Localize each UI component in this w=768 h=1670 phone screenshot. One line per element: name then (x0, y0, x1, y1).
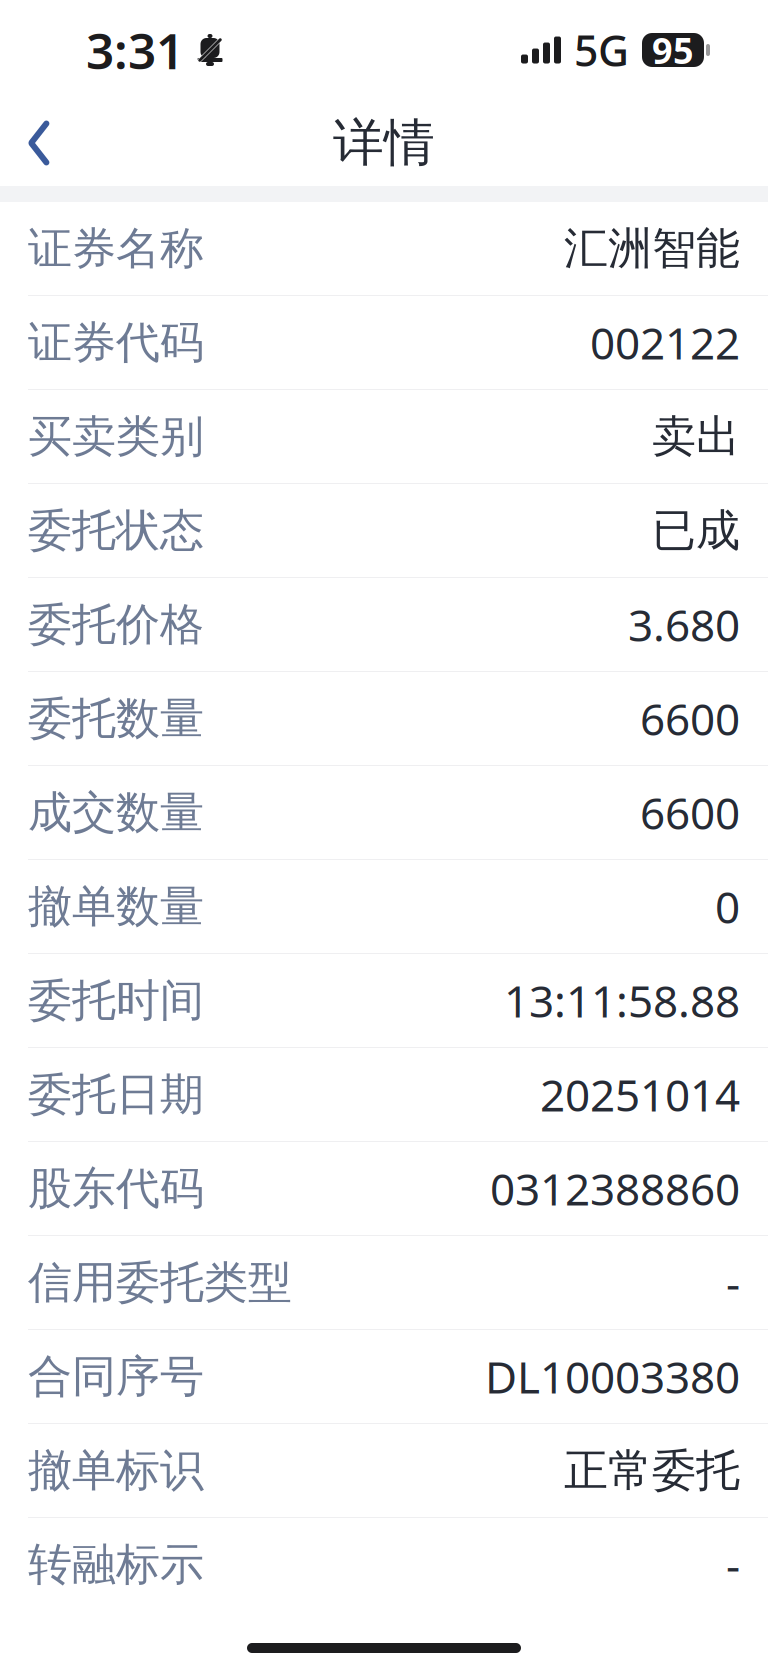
button[interactable]: 买卖类别 (0, 390, 768, 484)
staticText: 证券名称 (28, 221, 204, 275)
staticText: 002122 (590, 313, 740, 372)
staticText: 委托日期 (28, 1067, 204, 1121)
button[interactable]: 转融标示 (0, 1518, 768, 1611)
button[interactable]: 委托价格 (0, 578, 768, 672)
staticText: 0312388860 (490, 1159, 740, 1218)
staticText: 买卖类别 (28, 409, 204, 463)
button[interactable]: 撤单标识 (0, 1424, 768, 1518)
staticText: 3:31 (86, 17, 184, 83)
button[interactable]: 委托日期 (0, 1048, 768, 1142)
button[interactable]: 证券代码 (0, 296, 768, 390)
staticText: 卖出 (652, 409, 740, 463)
button[interactable]: 成交数量 (0, 766, 768, 860)
staticText: 汇洲智能 (564, 221, 740, 275)
staticText: 6600 (640, 689, 740, 748)
staticText: 正常委托 (564, 1443, 740, 1497)
button[interactable]: 合同序号 (0, 1330, 768, 1424)
staticText: 13:11:58.88 (504, 971, 740, 1030)
staticText: 撤单标识 (28, 1443, 204, 1497)
staticText: 95 (652, 26, 694, 74)
staticText: 信用委托类型 (28, 1255, 292, 1309)
staticText: 委托状态 (28, 503, 204, 557)
staticText: 委托价格 (28, 597, 204, 651)
staticText: 已成 (652, 503, 740, 557)
staticText: DL10003380 (485, 1347, 740, 1406)
staticText: 成交数量 (28, 785, 204, 839)
staticText: 合同序号 (28, 1349, 204, 1403)
staticText: 详情 (333, 112, 435, 174)
button[interactable]: 委托状态 (0, 484, 768, 578)
button[interactable]: 返回 (0, 100, 78, 186)
staticText: 股东代码 (28, 1161, 204, 1215)
staticText: 5G (574, 22, 629, 78)
staticText: - (726, 1253, 740, 1312)
button[interactable]: 委托数量 (0, 672, 768, 766)
button[interactable]: 股东代码 (0, 1142, 768, 1236)
button[interactable]: 委托时间 (0, 954, 768, 1048)
button[interactable]: 撤单数量 (0, 860, 768, 954)
staticText: 3.680 (628, 595, 740, 654)
button[interactable]: 信用委托类型 (0, 1236, 768, 1330)
staticText: 撤单数量 (28, 879, 204, 933)
staticText: 6600 (640, 783, 740, 842)
staticText: 0 (715, 877, 740, 936)
staticText: - (726, 1535, 740, 1594)
staticText: 转融标示 (28, 1537, 204, 1591)
button[interactable]: 证券名称 (0, 202, 768, 296)
staticText: 20251014 (540, 1065, 740, 1124)
staticText: 委托时间 (28, 973, 204, 1027)
staticText: 证券代码 (28, 315, 204, 369)
staticText: 委托数量 (28, 691, 204, 745)
